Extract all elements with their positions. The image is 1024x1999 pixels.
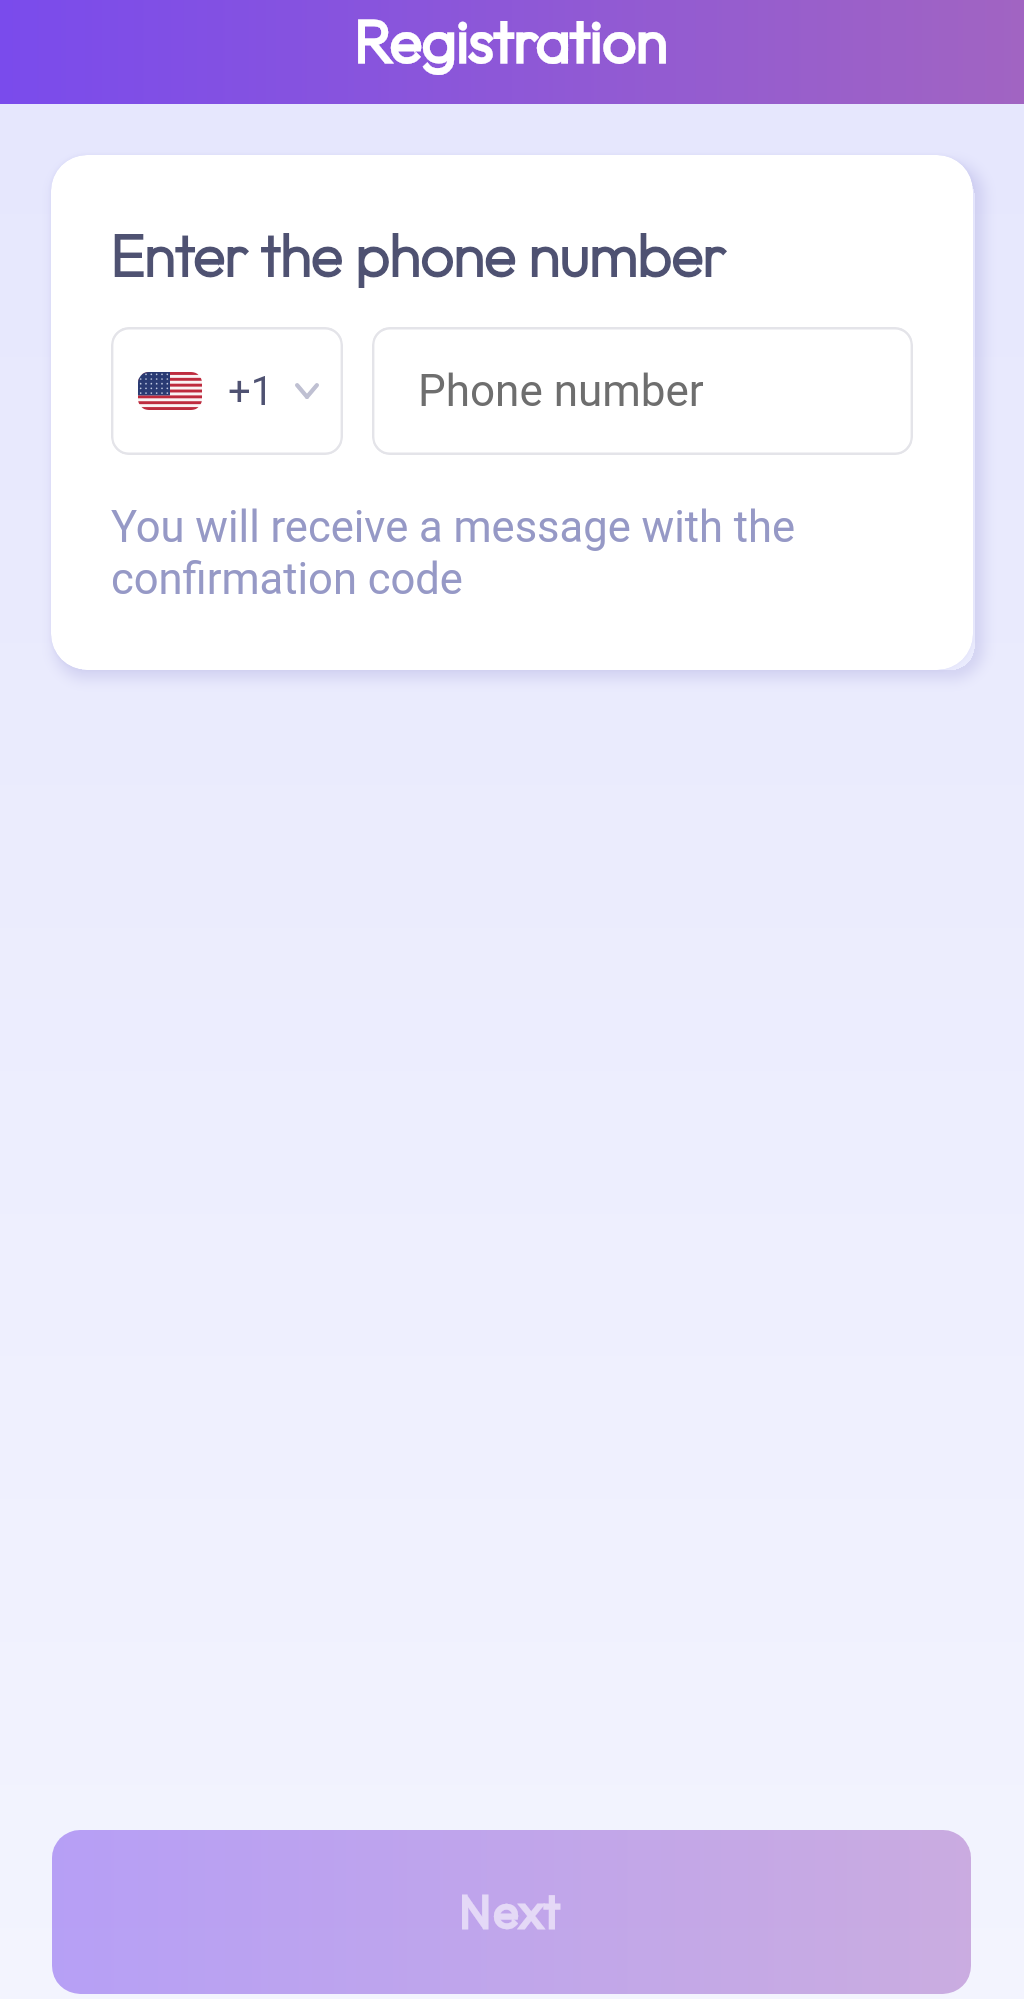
staticText: Registration [355,4,669,76]
staticText: Next [460,1883,563,1938]
staticText: Phone number [418,365,704,417]
button[interactable]: Phone number [372,327,913,455]
staticText: Enter the phone number [111,217,727,289]
button[interactable]: Select country code, currently +1 [111,327,343,455]
staticText: Enter the phone number [111,217,727,289]
staticText: Next [460,1883,563,1938]
staticText: You will receive a message with the conf… [111,502,913,605]
staticText: +1 [228,368,274,415]
button[interactable]: Next [52,1830,971,1994]
staticText: Registration [355,4,669,76]
